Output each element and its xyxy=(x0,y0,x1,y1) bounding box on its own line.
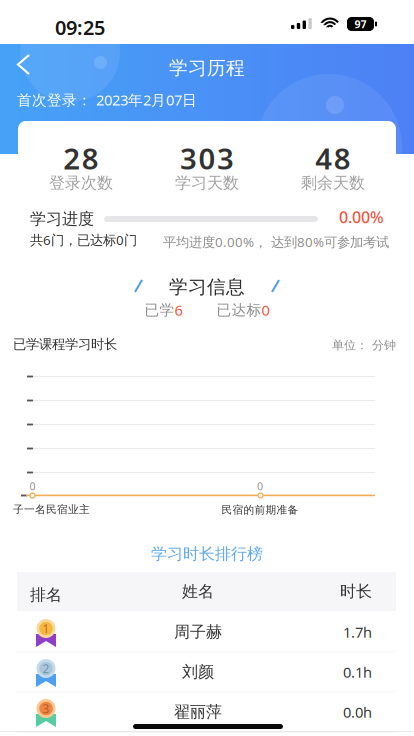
staticText: 已学 xyxy=(144,301,174,319)
staticText: 2 xyxy=(42,661,49,676)
staticText: 09:25 xyxy=(55,14,105,41)
staticText: 0.00% xyxy=(339,206,384,228)
staticText: 单位： 分钟 xyxy=(332,338,396,353)
staticText: 子一名民宿业主 xyxy=(13,503,90,516)
staticText: 0.1h xyxy=(343,662,372,682)
staticText: 刘颜 xyxy=(182,662,214,682)
staticText: 0 xyxy=(257,479,263,493)
staticText: 已学课程学习时长 xyxy=(13,336,117,352)
staticText: 1 xyxy=(42,621,49,636)
staticText: 平均进度0.00%， 达到80%可参加考试 xyxy=(163,233,389,251)
staticText: 学习天数 xyxy=(175,173,239,193)
staticText: 48 xyxy=(315,138,351,177)
staticText: 共6门，已达标0门 xyxy=(30,231,137,249)
staticText: 学习信息 xyxy=(169,275,245,298)
staticText: 0 xyxy=(261,300,269,320)
staticText: 已达标 xyxy=(216,301,261,319)
staticText: 1.7h xyxy=(343,622,372,642)
button[interactable]: 2 xyxy=(17,652,396,692)
button[interactable]: 3 xyxy=(17,692,396,732)
staticText: 民宿的前期准备 xyxy=(221,503,298,516)
staticText: 首次登录： 2023年2月07日 xyxy=(17,90,197,109)
staticText: 翟丽萍 xyxy=(174,702,222,722)
staticText: 姓名 xyxy=(182,582,214,601)
staticText: 登录次数 xyxy=(49,173,113,193)
button[interactable]: 返回 xyxy=(0,44,46,86)
staticText: 学习历程 xyxy=(169,56,245,79)
staticText: 97 xyxy=(354,17,366,31)
staticText: 0.0h xyxy=(343,702,372,722)
staticText: 6 xyxy=(174,300,182,320)
staticText: 学习时长排行榜 xyxy=(151,544,263,564)
staticText: 0 xyxy=(29,479,35,493)
staticText: 时长 xyxy=(340,582,372,601)
staticText: 周子赫 xyxy=(174,622,222,642)
staticText: 303 xyxy=(180,138,234,177)
staticText: 剩余天数 xyxy=(301,173,365,193)
staticText: 3 xyxy=(42,701,49,716)
button[interactable]: 1 xyxy=(17,612,396,652)
staticText: 排名 xyxy=(30,585,62,605)
staticText: 28 xyxy=(63,138,99,177)
staticText: 学习进度 xyxy=(30,209,94,229)
